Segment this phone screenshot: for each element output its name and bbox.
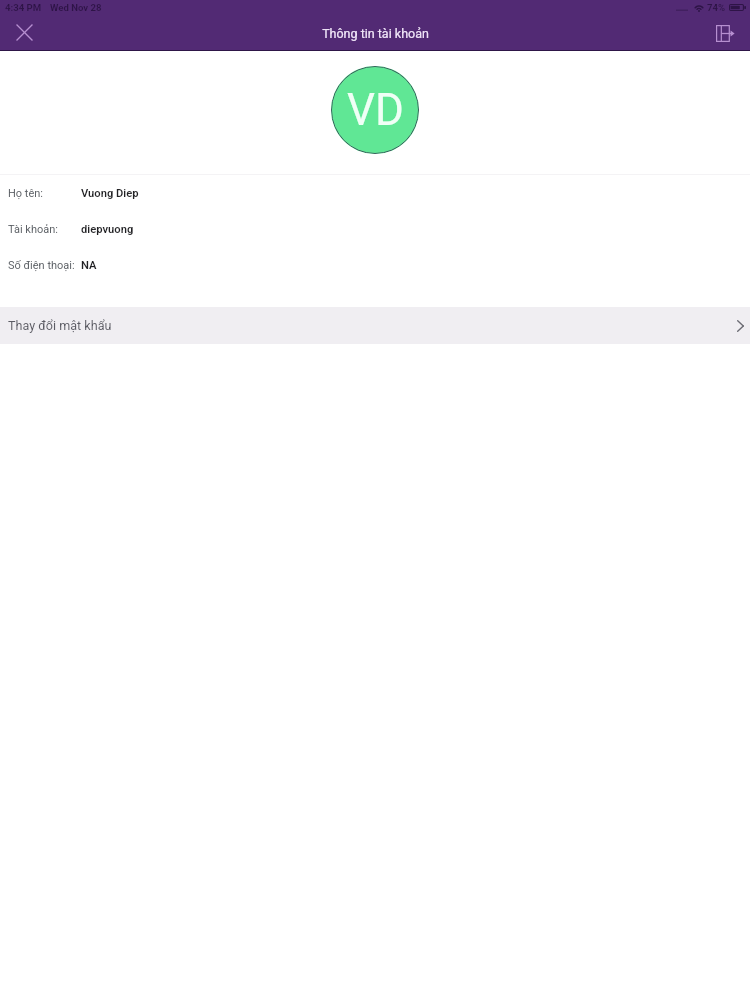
staticText: 74% <box>707 2 726 13</box>
button[interactable]: Close <box>4 15 44 49</box>
staticText: Tài khoản: <box>8 223 58 236</box>
button[interactable]: Log out <box>705 16 745 50</box>
staticText: Thay đổi mật khẩu <box>8 318 112 333</box>
staticText: diepvuong <box>81 223 134 236</box>
button[interactable]: Thay đổi mật khẩu <box>0 307 750 344</box>
staticText: Vuong Diep <box>81 187 139 200</box>
staticText: Số điện thoại: <box>8 259 75 272</box>
staticText: 4:34 PM <box>5 2 42 13</box>
staticText: Họ tên: <box>8 187 44 200</box>
staticText: Thông tin tài khoản <box>322 26 429 41</box>
staticText: NA <box>81 259 97 272</box>
staticText: Wed Nov 28 <box>50 2 102 13</box>
staticText: VD <box>347 84 404 136</box>
